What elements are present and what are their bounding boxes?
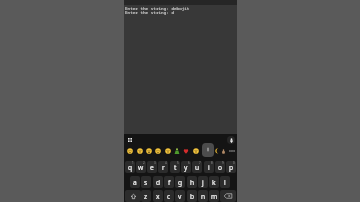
button[interactable]: n xyxy=(198,190,208,202)
staticText: l xyxy=(224,178,226,187)
staticText: q xyxy=(128,163,133,172)
staticText: 2 xyxy=(143,161,145,165)
button[interactable] xyxy=(163,144,172,158)
staticText: 7 xyxy=(199,161,201,165)
staticText: 5 xyxy=(177,161,179,165)
staticText: 6 xyxy=(188,161,190,165)
button[interactable]: Selected suggestion xyxy=(202,143,214,157)
staticText: 9 xyxy=(222,161,224,165)
button[interactable]: g xyxy=(175,176,185,188)
button[interactable] xyxy=(181,144,190,158)
staticText: d xyxy=(156,178,161,187)
staticText: v xyxy=(178,192,182,201)
staticText: s xyxy=(144,178,148,187)
staticText: j xyxy=(202,178,204,187)
staticText: f xyxy=(168,178,171,187)
button[interactable]: m xyxy=(209,190,219,202)
button[interactable]: w xyxy=(136,161,146,173)
button[interactable]: f xyxy=(164,176,174,188)
button[interactable]: More emoji xyxy=(227,144,236,158)
button[interactable] xyxy=(219,144,228,158)
staticText: h xyxy=(190,178,195,187)
button[interactable] xyxy=(191,144,200,158)
staticText: 3 xyxy=(154,161,156,165)
button[interactable]: s xyxy=(141,176,151,188)
button[interactable]: y xyxy=(181,161,191,173)
button[interactable] xyxy=(212,144,221,158)
staticText: 1 xyxy=(132,161,134,165)
button[interactable]: d xyxy=(153,176,163,188)
button[interactable]: Keyboard modes xyxy=(125,135,135,145)
button[interactable]: j xyxy=(198,176,208,188)
staticText: e xyxy=(150,163,154,172)
staticText: w xyxy=(138,163,144,172)
button[interactable]: a xyxy=(130,176,140,188)
button[interactable] xyxy=(144,144,153,158)
staticText: c xyxy=(167,192,171,201)
button[interactable]: q xyxy=(125,161,135,173)
button[interactable]: l xyxy=(220,176,230,188)
staticText: u xyxy=(195,163,200,172)
button[interactable]: Shift xyxy=(125,190,141,202)
button[interactable]: Voice input xyxy=(227,136,235,144)
button[interactable]: r xyxy=(158,161,168,173)
staticText: g xyxy=(178,178,183,187)
staticText: k xyxy=(212,178,216,187)
button[interactable]: Backspace xyxy=(220,190,236,202)
staticText: r xyxy=(162,163,165,172)
button[interactable] xyxy=(125,144,134,158)
button[interactable]: h xyxy=(187,176,197,188)
staticText: n xyxy=(201,192,206,201)
button[interactable]: z xyxy=(141,190,151,202)
button[interactable]: v xyxy=(175,190,185,202)
staticText: t xyxy=(174,163,177,172)
button[interactable]: x xyxy=(153,190,163,202)
staticText: x xyxy=(156,192,160,201)
button[interactable]: o xyxy=(215,161,225,173)
button[interactable]: p xyxy=(226,161,236,173)
button[interactable]: t xyxy=(170,161,180,173)
staticText: b xyxy=(190,192,195,201)
button[interactable]: i xyxy=(204,161,214,173)
staticText: z xyxy=(144,192,148,201)
staticText: 0 xyxy=(233,161,235,165)
button[interactable] xyxy=(172,144,181,158)
staticText: o xyxy=(218,163,222,172)
staticText: 4 xyxy=(165,161,167,165)
button[interactable]: c xyxy=(164,190,174,202)
button[interactable]: k xyxy=(209,176,219,188)
staticText: i xyxy=(208,163,210,172)
staticText: Enter the string: debojit Enter the stri… xyxy=(125,5,190,16)
staticText: m xyxy=(211,192,218,201)
button[interactable]: u xyxy=(192,161,202,173)
button[interactable] xyxy=(135,144,144,158)
staticText: 8 xyxy=(211,161,213,165)
staticText: a xyxy=(133,178,137,187)
button[interactable] xyxy=(153,144,162,158)
staticText: p xyxy=(229,163,234,172)
staticText: y xyxy=(184,163,188,172)
button[interactable]: e xyxy=(147,161,157,173)
button[interactable]: b xyxy=(187,190,197,202)
